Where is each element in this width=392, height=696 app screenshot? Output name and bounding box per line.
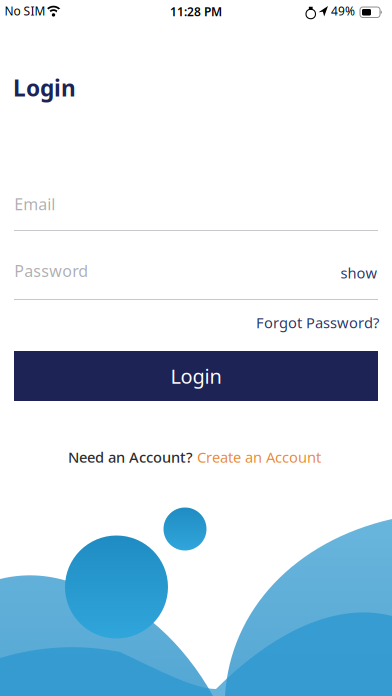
staticText: 11:28 PM — [170, 4, 222, 19]
staticText: Email — [14, 193, 55, 214]
button[interactable]: Forgot Password? — [256, 313, 379, 332]
staticText: Forgot Password? — [256, 313, 379, 332]
staticText: Create an Account — [197, 447, 321, 467]
staticText: Need an Account? — [68, 447, 197, 467]
button[interactable]: Create an Account — [197, 447, 321, 467]
staticText: 49% — [331, 3, 355, 19]
staticText: show — [340, 263, 377, 283]
staticText: Login — [170, 363, 221, 389]
button[interactable]: Login — [14, 351, 378, 401]
staticText: Password — [14, 260, 88, 281]
staticText: Login — [13, 73, 76, 103]
button[interactable]: Password — [14, 260, 378, 300]
staticText: No SIM — [5, 3, 46, 19]
button[interactable]: show — [340, 263, 377, 283]
button[interactable]: Email — [14, 193, 378, 231]
